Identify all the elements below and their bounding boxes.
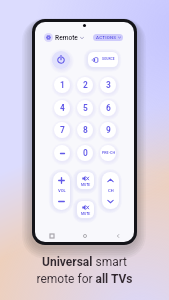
button[interactable]: Back [101,229,134,242]
staticText: ACTIONS [96,35,117,40]
button[interactable]: PRE-CH [100,145,116,161]
button[interactable]: MUTE [77,172,94,189]
button[interactable] [54,145,70,161]
button[interactable]: 2 [77,77,93,93]
button[interactable]: Home [68,229,101,242]
button[interactable]: Volume up [53,172,70,188]
staticText: VOL [58,188,66,193]
button[interactable]: Remote [44,33,84,42]
button[interactable]: Channel up [102,172,119,188]
staticText: 0 [83,148,88,158]
staticText: Remote [55,34,78,42]
button[interactable]: 1 [54,77,70,93]
button[interactable]: 3 [100,77,116,93]
button[interactable]: 8 [77,122,93,138]
staticText: MUTE [81,183,91,187]
button[interactable]: Recents [35,229,68,242]
staticText: 7 [60,125,65,135]
button[interactable]: Source [88,52,118,67]
button[interactable]: Power [52,51,70,69]
button[interactable]: MUTE [77,201,94,218]
staticText: 8 [83,125,88,135]
staticText: CH [108,188,114,193]
button[interactable]: Channel down [102,193,119,209]
staticText: 4 [60,103,65,113]
button[interactable]: Volume down [53,193,70,210]
staticText: PRE-CH [102,151,115,155]
staticText: SOURCE [102,57,115,61]
button[interactable]: 7 [54,122,70,138]
button[interactable]: 6 [100,100,116,116]
button[interactable]: 0 [77,145,93,161]
staticText: 5 [83,103,88,113]
staticText: 2 [83,80,88,90]
staticText: Universal smart remote for all TVs [0,255,169,286]
button[interactable]: 9 [100,122,116,138]
staticText: 1 [60,80,65,90]
staticText: 3 [106,80,111,90]
button[interactable]: 5 [77,100,93,116]
staticText: 9 [106,125,111,135]
staticText: MUTE [81,212,91,216]
button[interactable]: 4 [54,100,70,116]
staticText: 6 [106,103,111,113]
button[interactable]: ACTIONS [93,34,123,41]
